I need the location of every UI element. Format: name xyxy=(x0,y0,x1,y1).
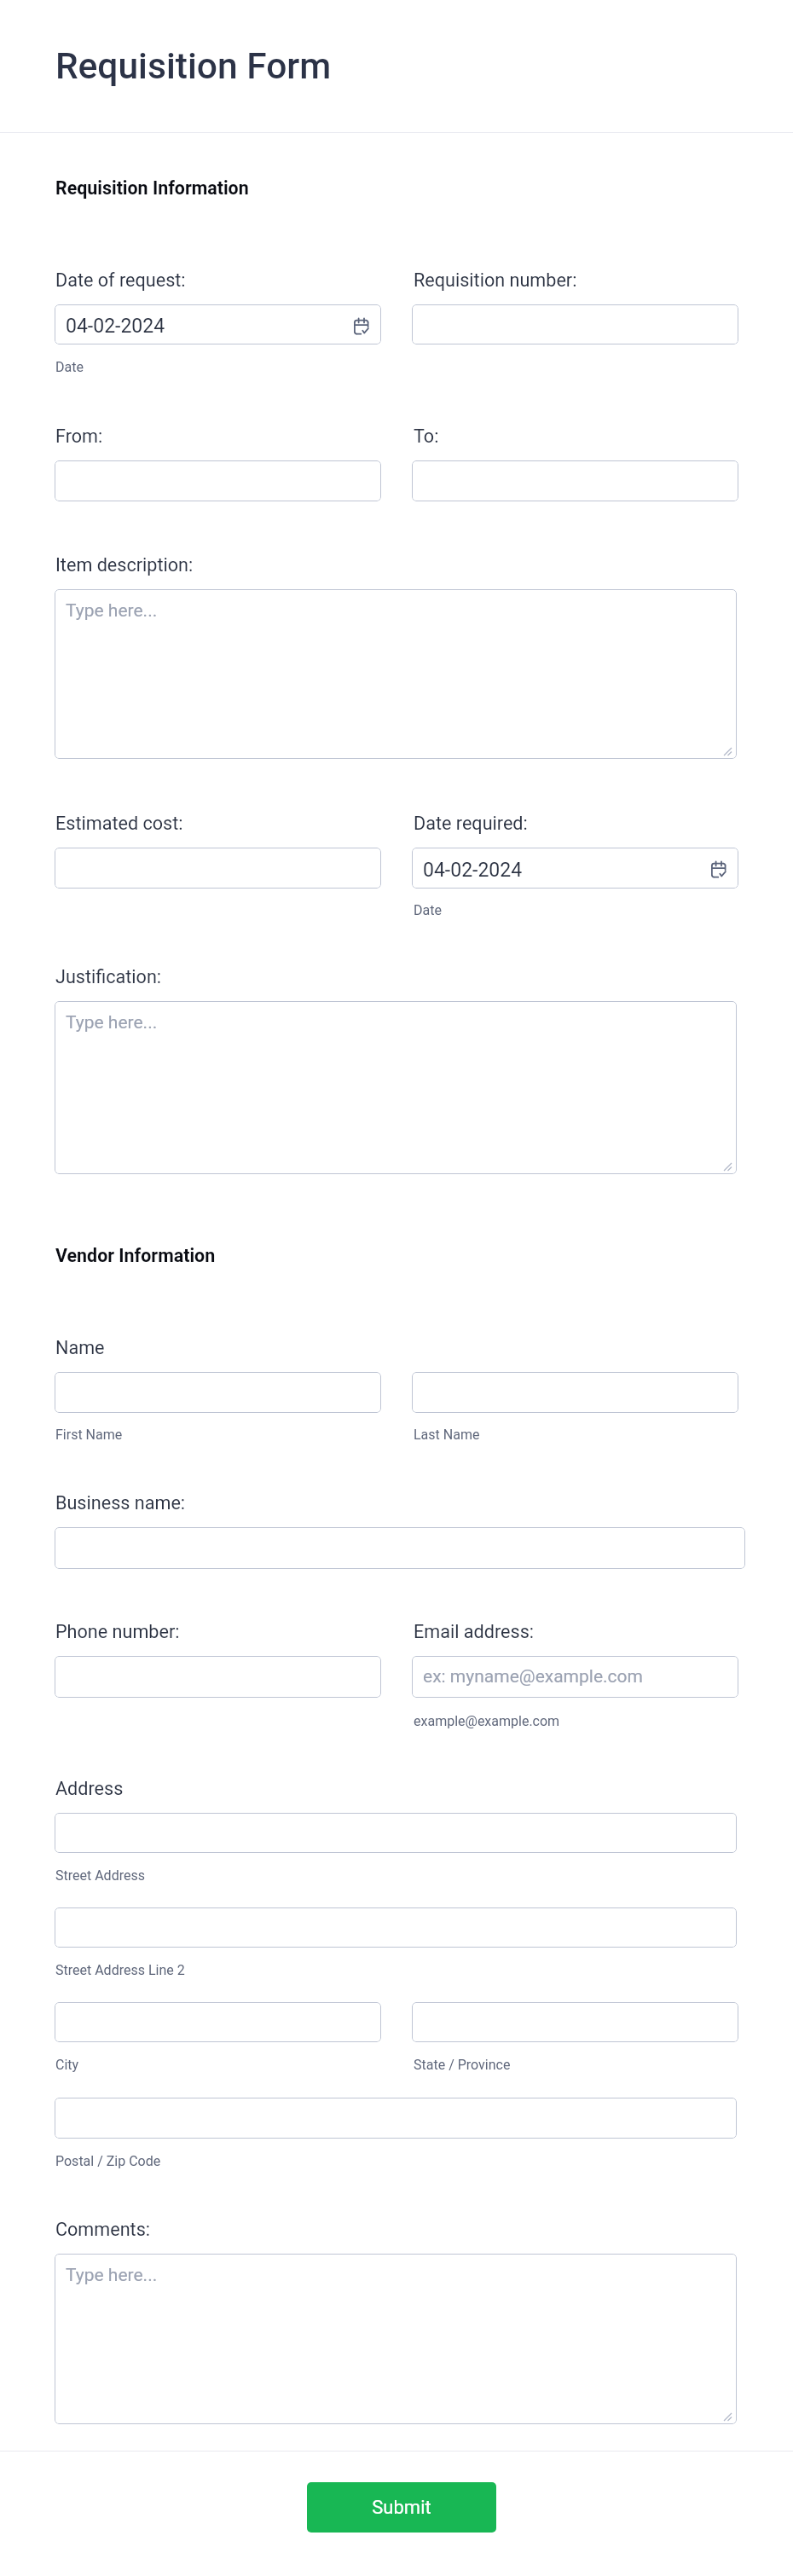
staticText: Address xyxy=(55,1778,124,1799)
staticText: Last Name xyxy=(414,1427,480,1443)
button[interactable] xyxy=(55,1527,745,1569)
staticText: Justification: xyxy=(55,966,162,987)
button[interactable] xyxy=(412,1372,738,1413)
staticText: From: xyxy=(55,425,103,447)
staticText: State / Province xyxy=(414,2057,511,2073)
staticText: ex: myname@example.com xyxy=(423,1666,643,1687)
staticText: Postal / Zip Code xyxy=(55,2153,161,2169)
button[interactable] xyxy=(55,1813,737,1853)
staticText: 04-02-2024 xyxy=(423,859,523,882)
staticText: Submit xyxy=(372,2497,431,2519)
staticText: Date xyxy=(414,902,442,918)
button[interactable] xyxy=(55,460,381,501)
staticText: Estimated cost: xyxy=(55,813,183,834)
staticText: Phone number: xyxy=(55,1621,180,1642)
staticText: Vendor Information xyxy=(55,1245,216,1266)
staticText: Date required: xyxy=(414,813,528,834)
button[interactable] xyxy=(55,1907,737,1948)
staticText: 04-02-2024 xyxy=(66,315,165,338)
button[interactable]: Type here... xyxy=(55,2254,737,2424)
button[interactable]: Open calendar xyxy=(709,860,730,881)
button[interactable] xyxy=(412,460,738,501)
staticText: Type here... xyxy=(66,1012,158,1033)
staticText: Item description: xyxy=(55,554,194,576)
staticText: example@example.com xyxy=(414,1713,560,1729)
button[interactable] xyxy=(412,304,738,344)
button[interactable]: 04-02-2024 xyxy=(412,848,738,889)
staticText: Business name: xyxy=(55,1492,186,1514)
staticText: Requisition Form xyxy=(55,45,332,88)
button[interactable] xyxy=(55,2098,737,2139)
button[interactable]: Open calendar xyxy=(352,317,373,338)
button[interactable] xyxy=(55,1656,381,1698)
staticText: First Name xyxy=(55,1427,123,1443)
staticText: Requisition Information xyxy=(55,177,249,199)
button[interactable] xyxy=(412,2002,738,2042)
button[interactable]: Type here... xyxy=(55,1001,737,1174)
staticText: Email address: xyxy=(414,1621,535,1642)
button[interactable]: Type here... xyxy=(55,589,737,759)
staticText: Name xyxy=(55,1337,105,1358)
staticText: Date xyxy=(55,359,84,375)
staticText: Comments: xyxy=(55,2219,151,2240)
staticText: Date of request: xyxy=(55,269,186,291)
staticText: Type here... xyxy=(66,600,158,622)
staticText: Street Address Line 2 xyxy=(55,1962,185,1978)
button[interactable] xyxy=(55,1372,381,1413)
staticText: City xyxy=(55,2057,79,2073)
button[interactable] xyxy=(55,848,381,889)
button[interactable]: ex: myname@example.com xyxy=(412,1656,738,1698)
staticText: Type here... xyxy=(66,2265,158,2286)
staticText: To: xyxy=(414,425,439,447)
button[interactable]: Submit xyxy=(307,2482,496,2533)
staticText: Requisition number: xyxy=(414,269,577,291)
staticText: Street Address xyxy=(55,1867,145,1884)
button[interactable] xyxy=(55,2002,381,2042)
button[interactable]: 04-02-2024 xyxy=(55,304,381,344)
